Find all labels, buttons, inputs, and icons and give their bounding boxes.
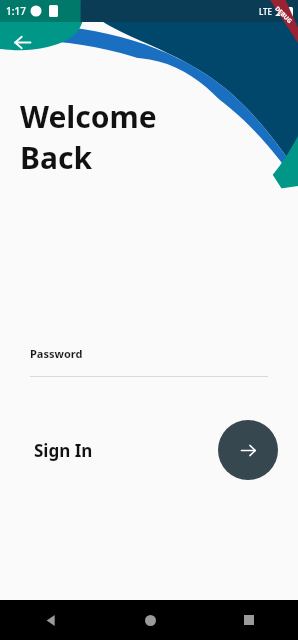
button[interactable]: Back (2, 22, 42, 62)
button[interactable]: Home (135, 605, 165, 635)
staticText: Back (20, 137, 92, 178)
button[interactable]: Password (30, 346, 268, 377)
staticText: LTE (259, 6, 273, 17)
button[interactable]: Recent apps (234, 605, 264, 635)
button[interactable]: Sign In (20, 431, 107, 470)
button[interactable]: Back (35, 605, 65, 635)
staticText: Welcome (20, 96, 157, 137)
staticText: Sign In (34, 439, 93, 462)
staticText: 1:17 (6, 4, 26, 18)
button[interactable]: Sign in (218, 420, 278, 480)
staticText: DEBUG (273, 5, 294, 25)
staticText: Password (30, 346, 83, 361)
